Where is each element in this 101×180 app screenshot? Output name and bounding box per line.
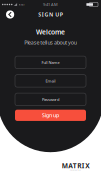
button[interactable]: Password bbox=[15, 93, 86, 106]
staticText: AT&T bbox=[18, 3, 24, 6]
staticText: Welcome bbox=[36, 28, 65, 36]
button[interactable]: Email bbox=[15, 75, 86, 87]
staticText: Password bbox=[42, 97, 59, 102]
staticText: Full Name bbox=[41, 60, 59, 65]
staticText: Sign up bbox=[42, 112, 59, 119]
button[interactable]: Sign up bbox=[15, 110, 86, 121]
staticText: MATRIX bbox=[62, 161, 89, 170]
staticText: SIGN UP bbox=[38, 11, 63, 18]
staticText: P R O P E R T I E S bbox=[70, 169, 81, 171]
staticText: Email bbox=[45, 78, 55, 83]
staticText: Please tell us about you bbox=[24, 39, 77, 46]
button[interactable]: Full Name bbox=[15, 56, 86, 69]
staticText: 9:41 AM bbox=[43, 2, 58, 7]
button[interactable]: Back bbox=[5, 9, 16, 20]
